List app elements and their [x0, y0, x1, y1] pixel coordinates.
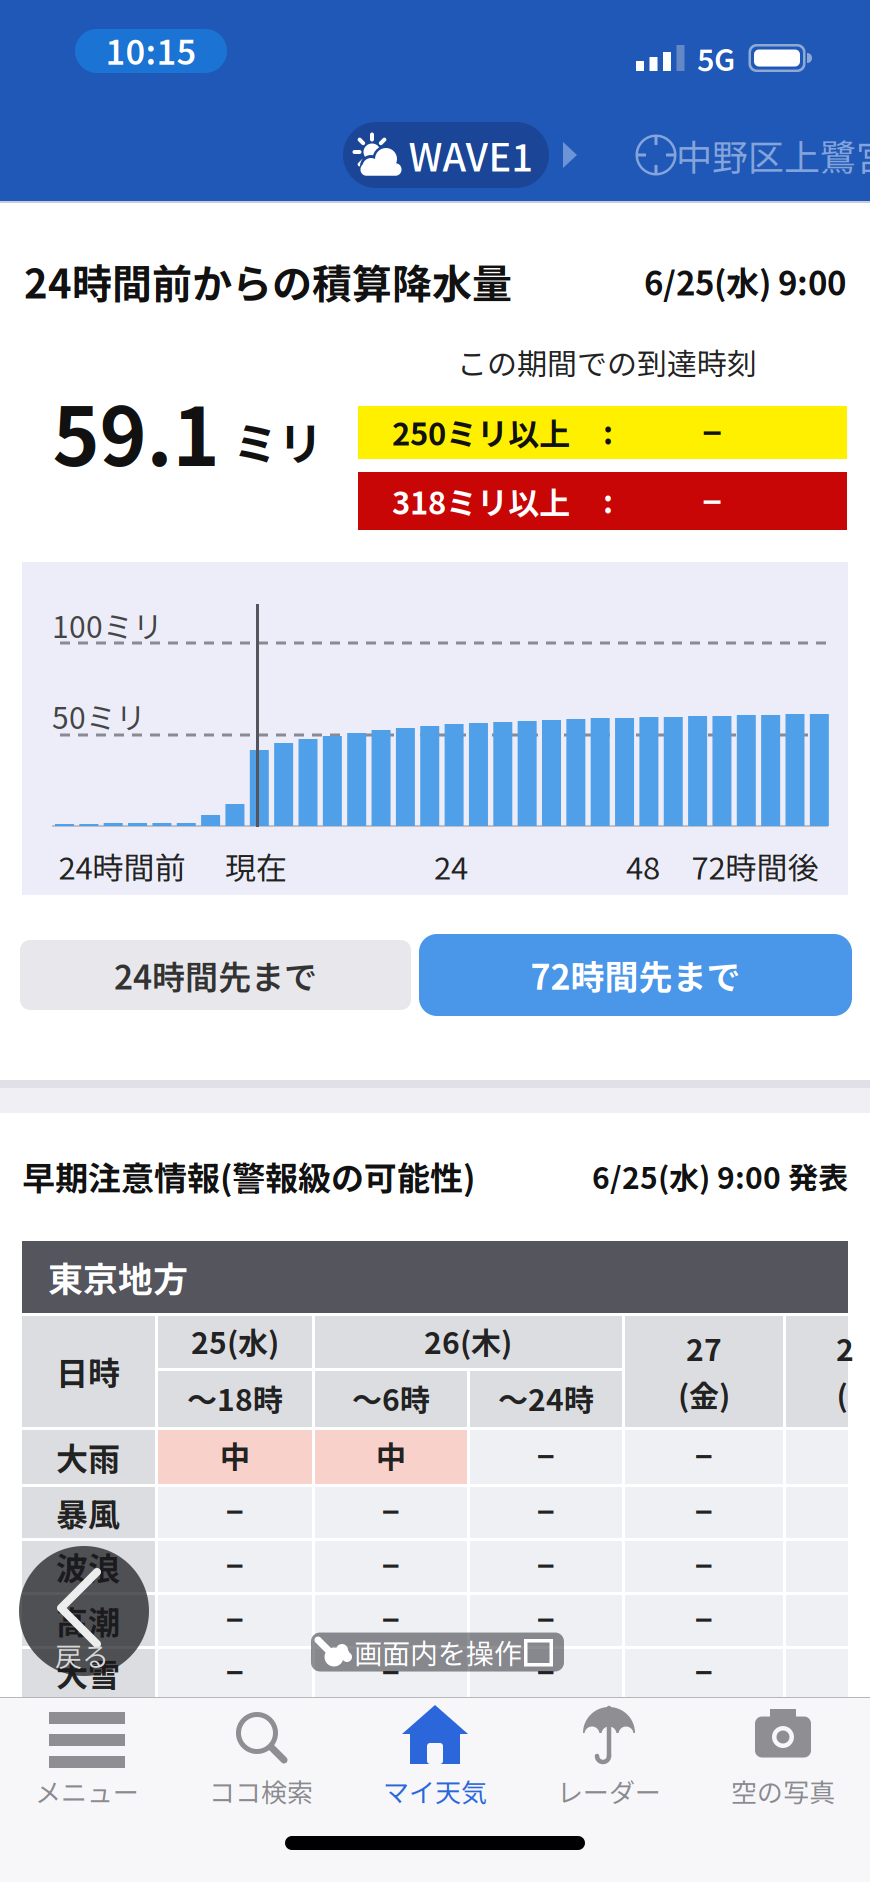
staticText: 東京地方	[48, 1252, 188, 1302]
staticText: 6/25(水) 9:00	[644, 257, 846, 305]
staticText: この期間での到達時刻	[457, 340, 757, 384]
staticText: 100ミリ	[52, 603, 163, 647]
staticText: 48	[626, 844, 660, 888]
button[interactable]: 24時間先まで	[20, 940, 411, 1010]
staticText: −	[382, 1649, 400, 1693]
staticText: 2	[836, 1326, 854, 1370]
staticText: 戻る	[55, 1635, 109, 1675]
staticText: −	[537, 1489, 555, 1532]
staticText: :	[603, 409, 613, 453]
staticText: レーダー	[557, 1772, 661, 1810]
staticText: 大雨	[56, 1434, 120, 1480]
staticText: 25(水)	[191, 1319, 279, 1363]
staticText: 27	[686, 1326, 722, 1370]
button[interactable]: WAVE1	[343, 122, 549, 188]
staticText: 318ミリ以上	[392, 479, 570, 523]
button[interactable]: メニュー	[0, 1697, 174, 1813]
staticText: 現在	[225, 844, 287, 888]
staticText: −	[695, 1433, 713, 1477]
staticText: マイ天気	[383, 1772, 487, 1810]
staticText: −	[226, 1649, 244, 1693]
button[interactable]: 72時間先まで	[419, 934, 852, 1016]
staticText: (	[836, 1372, 847, 1416]
staticText: −	[226, 1543, 244, 1586]
staticText: −	[537, 1597, 555, 1640]
staticText: −	[382, 1489, 400, 1532]
staticText: 24時間先まで	[114, 951, 317, 999]
staticText: 5G	[697, 36, 735, 80]
staticText: 中	[220, 1433, 250, 1477]
staticText: −	[695, 1489, 713, 1532]
staticText: −	[537, 1433, 555, 1477]
staticText: 24時間前	[58, 844, 185, 888]
staticText: 日時	[56, 1348, 120, 1394]
button[interactable]: マイ天気	[348, 1697, 522, 1813]
staticText: −	[382, 1597, 400, 1640]
staticText: 10:15	[105, 25, 196, 75]
staticText: 24時間前からの積算降水量	[24, 252, 512, 310]
staticText: 72時間後	[691, 844, 818, 888]
staticText: −	[537, 1649, 555, 1693]
staticText: 大雪	[56, 1650, 120, 1696]
staticText: 6/25(水) 9:00 発表	[592, 1154, 848, 1198]
staticText: 中野区上鷺宮	[676, 129, 870, 181]
staticText: 〜24時	[498, 1376, 594, 1420]
staticText: 早期注意情報(警報級の可能性)	[22, 1152, 475, 1200]
staticText: ココ検索	[209, 1772, 313, 1810]
staticText: 空の写真	[731, 1772, 835, 1810]
staticText: 暴風	[56, 1489, 120, 1536]
staticText: 250ミリ以上	[392, 410, 570, 454]
staticText: :	[603, 478, 613, 522]
staticText: (金)	[678, 1372, 730, 1416]
staticText: 72時間先まで	[530, 950, 740, 1000]
staticText: −	[382, 1543, 400, 1586]
staticText: −	[702, 407, 721, 455]
staticText: WAVE1	[408, 127, 533, 182]
button[interactable]: 戻る	[19, 1546, 149, 1676]
button[interactable]: ココ検索	[174, 1697, 348, 1813]
staticText: 高潮	[56, 1597, 120, 1644]
staticText: 中	[376, 1433, 406, 1477]
staticText: 26(木)	[424, 1319, 512, 1363]
button[interactable]: レーダー	[522, 1697, 696, 1813]
staticText: −	[695, 1649, 713, 1693]
staticText: −	[537, 1543, 555, 1586]
staticText: ミリ	[233, 408, 323, 474]
staticText: 〜6時	[352, 1376, 430, 1420]
staticText: 59.1	[52, 373, 219, 489]
staticText: 画面内を操作	[354, 1632, 522, 1672]
button[interactable]: 空の写真	[696, 1697, 870, 1813]
staticText: −	[226, 1489, 244, 1532]
staticText: −	[695, 1543, 713, 1586]
button[interactable]: 中野区上鷺宮	[623, 125, 870, 185]
staticText: −	[702, 476, 721, 524]
staticText: −	[695, 1597, 713, 1640]
staticText: 波浪	[56, 1543, 120, 1590]
staticText: 〜18時	[187, 1376, 283, 1420]
staticText: −	[226, 1597, 244, 1640]
staticText: 50ミリ	[52, 694, 146, 738]
staticText: メニュー	[35, 1772, 139, 1810]
staticText: 24	[434, 844, 468, 888]
